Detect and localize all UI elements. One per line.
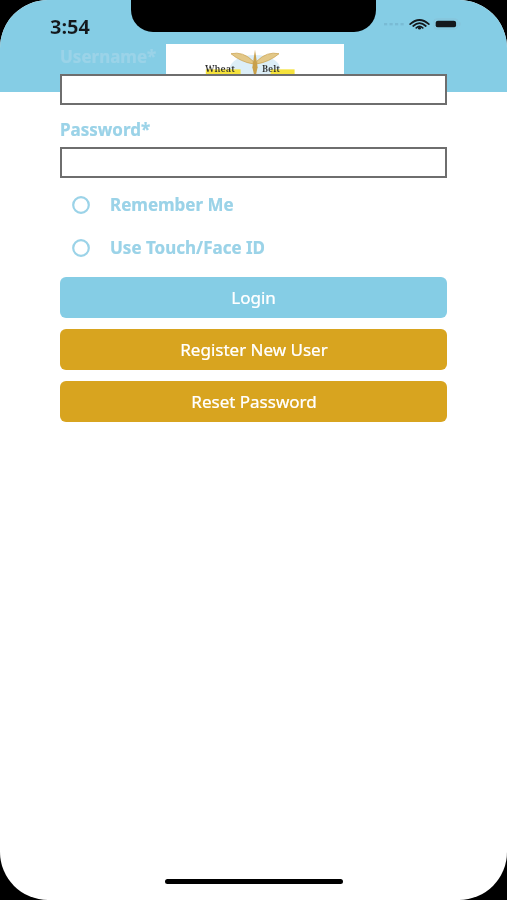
- staticText: Reset Password: [191, 390, 317, 413]
- button[interactable]: Remember Me: [60, 193, 447, 216]
- button[interactable]: Login: [60, 277, 447, 318]
- staticText: 3:54: [50, 13, 90, 40]
- other: Wheat Belt logo: [195, 51, 315, 85]
- button[interactable]: [60, 74, 447, 105]
- staticText: Password*: [60, 118, 151, 141]
- staticText: Wheat: [205, 62, 235, 74]
- staticText: Use Touch/Face ID: [110, 236, 266, 259]
- button[interactable]: Reset Password: [60, 381, 447, 422]
- staticText: Username*: [60, 45, 157, 68]
- button[interactable]: [60, 147, 447, 178]
- staticText: Register New User: [180, 338, 328, 361]
- staticText: Login: [231, 286, 276, 309]
- staticText: Remember Me: [110, 193, 234, 216]
- staticText: Belt: [262, 62, 281, 74]
- button[interactable]: Register New User: [60, 329, 447, 370]
- button[interactable]: Use Touch/Face ID: [60, 236, 447, 259]
